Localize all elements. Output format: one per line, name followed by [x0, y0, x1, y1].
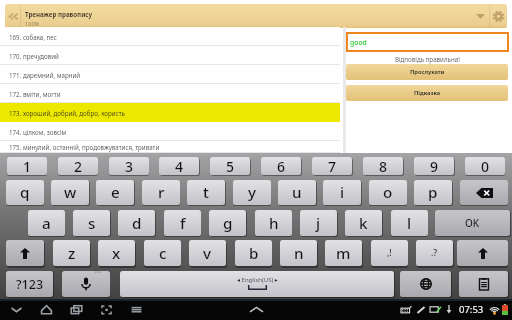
- button[interactable]: i: [323, 180, 361, 205]
- button[interactable]: Clipboard: [459, 271, 508, 297]
- staticText: b: [249, 243, 259, 264]
- button[interactable]: .?: [416, 240, 453, 266]
- staticText: f: [180, 213, 186, 234]
- button[interactable]: n: [280, 240, 317, 266]
- button[interactable]: 8: [363, 157, 403, 175]
- staticText: 174. цілком, зовсім: [9, 128, 67, 136]
- staticText: s: [88, 213, 96, 234]
- button[interactable]: 169. собака, пес: [0, 27, 340, 46]
- staticText: Тренажер правопису: [25, 10, 93, 18]
- staticText: k: [359, 213, 368, 234]
- button[interactable]: m: [325, 240, 362, 266]
- staticText: u: [292, 182, 302, 203]
- button[interactable]: Back: [5, 4, 20, 28]
- staticText: 07:53: [459, 303, 484, 316]
- staticText: n: [294, 243, 304, 264]
- button[interactable]: Shift: [6, 240, 44, 266]
- staticText: a: [42, 213, 51, 234]
- staticText: Підказка: [414, 89, 441, 97]
- button[interactable]: v: [189, 240, 226, 266]
- staticText: Прослухати: [410, 68, 445, 76]
- button[interactable]: s: [73, 210, 110, 236]
- button[interactable]: a: [28, 210, 65, 236]
- button[interactable]: q: [6, 180, 44, 205]
- button[interactable]: Back: [1, 299, 31, 320]
- button[interactable]: 170. пречудовий: [0, 46, 340, 65]
- button[interactable]: Hide keyboard: [243, 299, 269, 320]
- button[interactable]: Recent apps: [61, 299, 91, 320]
- button[interactable]: Home: [31, 299, 61, 320]
- button[interactable]: More options: [472, 4, 489, 28]
- staticText: m: [336, 243, 351, 264]
- staticText: e: [111, 182, 120, 203]
- button[interactable]: Screenshot: [91, 299, 121, 320]
- staticText: 173. хороший, добрий, добро, користь: [9, 109, 125, 117]
- staticText: w: [64, 182, 77, 203]
- button[interactable]: y: [233, 180, 271, 205]
- button[interactable]: x: [98, 240, 135, 266]
- button[interactable]: 4: [159, 157, 199, 175]
- button[interactable]: r: [142, 180, 180, 205]
- button[interactable]: t: [187, 180, 225, 205]
- button[interactable]: OK: [435, 210, 510, 236]
- button[interactable]: w: [51, 180, 89, 205]
- button[interactable]: d: [118, 210, 155, 236]
- button[interactable]: 2: [58, 157, 98, 175]
- button[interactable]: Shift: [457, 240, 508, 266]
- button[interactable]: Menu: [121, 299, 151, 320]
- button[interactable]: 0: [465, 157, 505, 175]
- staticText: .?: [431, 247, 438, 259]
- button[interactable]: k: [345, 210, 382, 236]
- button[interactable]: Change language: [400, 271, 451, 297]
- staticText: 8: [379, 157, 388, 175]
- button[interactable]: 9: [414, 157, 454, 175]
- button[interactable]: 172. вміти, могти: [0, 84, 340, 103]
- staticText: 175. минулий, останній, продовжуватися, …: [9, 143, 160, 151]
- staticText: x: [112, 243, 121, 264]
- staticText: Відповідь правильна!: [395, 55, 460, 63]
- button[interactable]: good: [346, 32, 509, 52]
- staticText: good: [350, 38, 367, 47]
- button[interactable]: Підказка: [346, 85, 508, 101]
- button[interactable]: j: [300, 210, 337, 236]
- staticText: o: [383, 182, 393, 203]
- button[interactable]: Voice input: [62, 271, 110, 297]
- button[interactable]: ◂ English(US) ▸: [120, 271, 394, 297]
- button[interactable]: 5: [210, 157, 250, 175]
- button[interactable]: 6: [261, 157, 301, 175]
- button[interactable]: ,!: [371, 240, 408, 266]
- staticText: 170. пречудовий: [9, 52, 59, 60]
- button[interactable]: ?123: [6, 271, 53, 297]
- button[interactable]: h: [255, 210, 292, 236]
- button[interactable]: Settings: [490, 4, 507, 28]
- button[interactable]: 173. хороший, добрий, добро, користь: [0, 103, 340, 122]
- staticText: 5: [226, 157, 235, 175]
- button[interactable]: z: [53, 240, 90, 266]
- button[interactable]: Backspace: [460, 180, 508, 205]
- button[interactable]: 174. цілком, зовсім: [0, 122, 340, 141]
- button[interactable]: c: [144, 240, 181, 266]
- button[interactable]: 175. минулий, останній, продовжуватися, …: [0, 141, 340, 153]
- staticText: g: [223, 213, 233, 234]
- button[interactable]: 1: [7, 157, 47, 175]
- staticText: 2: [74, 157, 83, 175]
- button[interactable]: 3: [109, 157, 149, 175]
- button[interactable]: g: [209, 210, 246, 236]
- staticText: j: [316, 213, 321, 234]
- staticText: p: [428, 182, 438, 203]
- button[interactable]: 171. даремний, марний: [0, 65, 340, 84]
- staticText: y: [248, 182, 257, 203]
- button[interactable]: b: [235, 240, 272, 266]
- staticText: 171. даремний, марний: [9, 71, 81, 79]
- button[interactable]: o: [369, 180, 407, 205]
- button[interactable]: l: [391, 210, 428, 236]
- button[interactable]: p: [414, 180, 452, 205]
- button[interactable]: 7: [312, 157, 352, 175]
- staticText: r: [158, 182, 165, 203]
- staticText: d: [132, 213, 142, 234]
- button[interactable]: u: [278, 180, 316, 205]
- button[interactable]: f: [164, 210, 201, 236]
- button[interactable]: e: [96, 180, 134, 205]
- button[interactable]: Прослухати: [346, 64, 508, 80]
- staticText: z: [68, 243, 76, 264]
